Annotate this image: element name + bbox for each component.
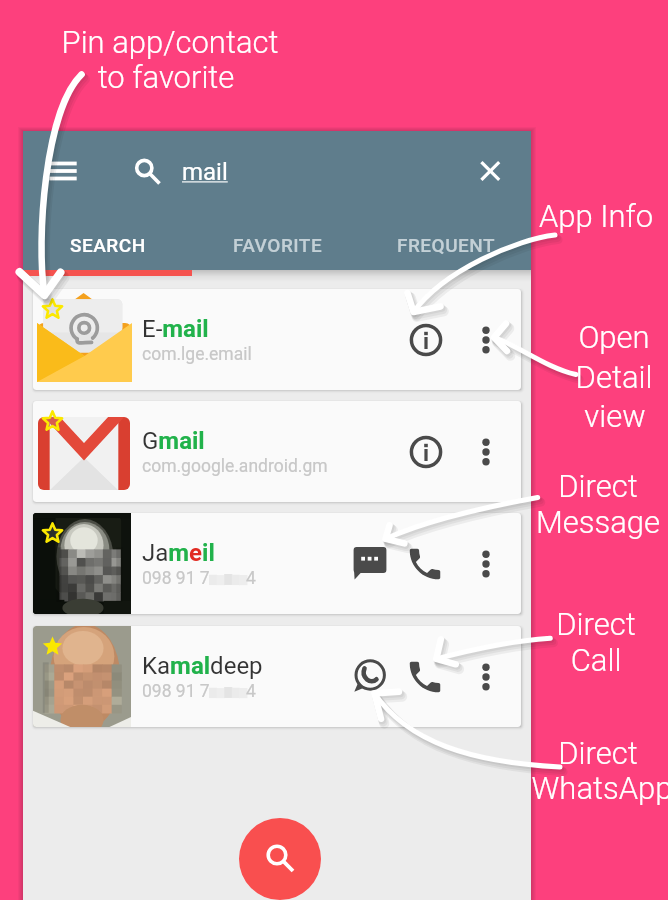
staticText: Direct bbox=[428, 735, 668, 771]
staticText: to favorite bbox=[0, 59, 336, 95]
staticText: Open bbox=[444, 319, 668, 355]
button[interactable]: Call bbox=[399, 538, 451, 590]
staticText: Pin app/contact bbox=[0, 24, 340, 60]
button[interactable]: Search bbox=[239, 818, 321, 900]
staticText: FAVORITE bbox=[233, 234, 323, 256]
staticText: 4 bbox=[246, 681, 256, 702]
button[interactable]: App info bbox=[400, 426, 452, 478]
staticText: Message bbox=[428, 504, 668, 540]
button[interactable]: Call bbox=[399, 651, 451, 703]
button[interactable]: Jameil bbox=[33, 513, 521, 614]
button[interactable]: Navigation menu bbox=[35, 141, 87, 193]
staticText: view bbox=[445, 398, 668, 434]
staticText: Jameil bbox=[142, 539, 215, 567]
staticText: App Info bbox=[426, 198, 668, 234]
button[interactable]: More options bbox=[460, 314, 512, 366]
staticText: Call bbox=[426, 642, 668, 678]
staticText: com.lge.email bbox=[142, 344, 252, 365]
button[interactable]: SEARCH bbox=[23, 221, 193, 268]
button[interactable]: E-mail bbox=[33, 289, 521, 390]
staticText: 098 91 7 bbox=[142, 568, 210, 589]
button[interactable]: More options bbox=[460, 538, 512, 590]
button[interactable]: More options bbox=[460, 426, 512, 478]
staticText: WhatsApp bbox=[432, 770, 668, 806]
button[interactable]: FREQUENT bbox=[362, 221, 531, 268]
button[interactable]: mail bbox=[182, 158, 228, 186]
button[interactable]: WhatsApp bbox=[344, 651, 396, 703]
staticText: SEARCH bbox=[70, 234, 146, 256]
staticText: Kamaldeep bbox=[142, 652, 263, 680]
staticText: 098 91 7 bbox=[142, 681, 210, 702]
staticText: E-mail bbox=[142, 315, 209, 343]
staticText: 4 bbox=[246, 568, 256, 589]
staticText: Gmail bbox=[142, 427, 205, 455]
button[interactable]: Search bbox=[120, 144, 168, 192]
staticText: Direct bbox=[426, 606, 668, 642]
button[interactable]: Send message bbox=[344, 538, 396, 590]
button[interactable]: Kamaldeep bbox=[33, 626, 521, 727]
button[interactable]: App info bbox=[400, 314, 452, 366]
staticText: Direct bbox=[428, 468, 668, 504]
button[interactable]: Gmail bbox=[33, 401, 521, 502]
staticText: com.google.android.gm bbox=[142, 456, 328, 477]
staticText: FREQUENT bbox=[397, 234, 496, 256]
button[interactable]: FAVORITE bbox=[193, 221, 362, 268]
staticText: Detail bbox=[444, 359, 668, 395]
button[interactable]: Close search bbox=[466, 147, 514, 195]
button[interactable]: More options bbox=[460, 651, 512, 703]
staticText: mail bbox=[182, 158, 228, 186]
